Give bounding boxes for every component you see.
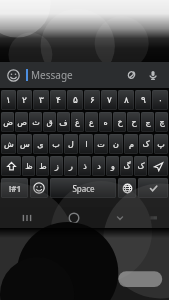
staticText: ۱ [6, 95, 11, 105]
staticText: ۴ [56, 95, 61, 105]
button[interactable]: س [17, 134, 32, 154]
button[interactable]: Hide keyboard [109, 207, 131, 228]
staticText: ۲ [22, 95, 27, 105]
button[interactable]: ۱ [1, 90, 16, 110]
button[interactable]: ع [85, 112, 98, 132]
staticText: گ [123, 162, 131, 171]
staticText: ۳ [39, 95, 44, 105]
staticText: Message [31, 68, 73, 82]
button[interactable]: ل [64, 134, 78, 154]
button[interactable]: Choose input method [144, 208, 164, 228]
button[interactable]: چ [155, 112, 168, 132]
staticText: ص [17, 118, 27, 127]
staticText: ذ [83, 162, 87, 171]
staticText: خ [117, 118, 123, 127]
staticText: ۷ [107, 95, 112, 105]
staticText: ش [4, 140, 14, 149]
staticText: ی [37, 140, 44, 149]
button[interactable]: ن [109, 134, 123, 154]
staticText: ۶ [90, 95, 95, 105]
button[interactable]: ک [134, 156, 147, 176]
button[interactable]: ط [36, 156, 49, 176]
staticText: ک [137, 162, 145, 171]
staticText: ظ [25, 162, 33, 171]
button[interactable]: ۵ [67, 90, 83, 110]
button[interactable]: Emoji [30, 178, 48, 198]
button[interactable]: Send [148, 156, 168, 176]
button[interactable]: ث [29, 112, 42, 132]
button[interactable]: ت [94, 134, 108, 154]
button[interactable]: ۳ [33, 90, 49, 110]
staticText: ل [68, 140, 74, 149]
button[interactable]: خ [113, 112, 126, 132]
button[interactable]: ب [49, 134, 63, 154]
button[interactable]: م [124, 134, 138, 154]
button[interactable]: ۰ [152, 90, 168, 110]
button[interactable]: ض [1, 112, 14, 132]
staticText: ا [85, 140, 88, 149]
button[interactable]: Shift [1, 156, 21, 176]
staticText: غ [75, 118, 80, 127]
staticText: ر [69, 162, 73, 171]
button[interactable]: گ [120, 156, 133, 176]
staticText: !#1 [9, 183, 21, 194]
button[interactable]: ف [57, 112, 70, 132]
button[interactable]: Recent apps [16, 207, 38, 228]
button[interactable]: ر [64, 156, 77, 176]
staticText: ث [32, 118, 40, 127]
staticText: ج [145, 118, 151, 127]
staticText: و [111, 162, 115, 171]
button[interactable]: Emoji [6, 68, 21, 83]
staticText: Space [72, 183, 95, 194]
staticText: ۸ [124, 95, 129, 105]
staticText: ۰ [158, 95, 163, 105]
button[interactable]: ۲ [17, 90, 32, 110]
staticText: ه [103, 118, 108, 127]
button[interactable]: ذ [78, 156, 91, 176]
staticText: ک [142, 140, 150, 149]
button[interactable]: پ [154, 134, 168, 154]
button[interactable]: ۶ [84, 90, 100, 110]
staticText: پ [157, 140, 165, 149]
button[interactable]: Voice message [145, 67, 161, 83]
staticText: ن [113, 140, 119, 149]
button[interactable]: ص [15, 112, 28, 132]
staticText: ف [59, 118, 68, 127]
staticText: ت [97, 140, 105, 149]
button[interactable]: ۸ [118, 90, 134, 110]
button[interactable]: ق [43, 112, 56, 132]
staticText: ط [39, 162, 47, 171]
button[interactable]: Home [63, 207, 85, 228]
button[interactable]: Space [50, 178, 116, 198]
button[interactable]: ش [1, 134, 16, 154]
button[interactable]: !#1 [1, 178, 28, 198]
button[interactable]: ح [127, 112, 140, 132]
staticText: ۵ [73, 95, 78, 105]
button[interactable]: ه [99, 112, 112, 132]
button[interactable]: Attach file [123, 67, 139, 83]
button[interactable]: ۴ [50, 90, 66, 110]
staticText: ع [89, 118, 94, 127]
button[interactable]: Done [138, 178, 168, 198]
button[interactable]: ۷ [101, 90, 117, 110]
staticText: چ [159, 118, 165, 127]
button[interactable]: ا [79, 134, 93, 154]
staticText: م [129, 140, 134, 149]
button[interactable]: ز [50, 156, 63, 176]
staticText: ض [3, 118, 13, 127]
button[interactable]: ی [33, 134, 48, 154]
button[interactable]: د [92, 156, 105, 176]
button[interactable]: Change language [118, 178, 136, 198]
button[interactable]: و [106, 156, 119, 176]
button[interactable]: ظ [22, 156, 35, 176]
staticText: ز [55, 162, 59, 171]
button[interactable]: ج [141, 112, 154, 132]
button[interactable]: ک [139, 134, 153, 154]
staticText: د [97, 162, 101, 171]
staticText: ح [131, 118, 137, 127]
staticText: ق [46, 118, 53, 127]
button[interactable]: ۹ [135, 90, 151, 110]
staticText: ۹ [141, 95, 146, 105]
staticText: ب [52, 140, 60, 149]
button[interactable]: غ [71, 112, 84, 132]
